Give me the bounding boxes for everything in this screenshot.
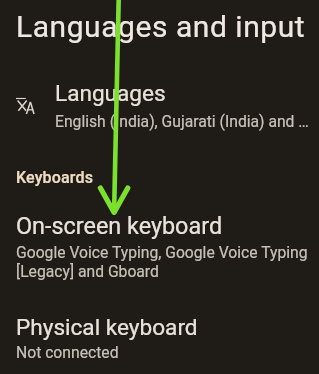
staticText: Google Voice Typing, Google Voice Typing… (16, 243, 309, 281)
button[interactable]: Physical keyboard (0, 311, 319, 370)
staticText: On-screen keyboard (16, 212, 223, 239)
staticText: English (India), Gujarati (India) and … (55, 112, 309, 130)
button[interactable]: On-screen keyboard (0, 209, 319, 290)
staticText: Languages and input (16, 9, 306, 44)
other: Languages (16, 98, 34, 114)
staticText: Languages (55, 80, 166, 106)
staticText: Physical keyboard (16, 314, 198, 340)
staticText: Not connected (16, 343, 119, 361)
staticText: Keyboards (16, 168, 94, 187)
button[interactable]: Languages (0, 78, 319, 139)
